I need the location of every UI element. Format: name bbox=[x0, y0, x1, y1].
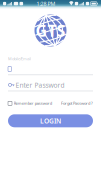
staticText: LOGIN bbox=[40, 116, 61, 125]
staticText: 1:28 PM bbox=[37, 0, 56, 7]
staticText: GTS bbox=[35, 20, 65, 41]
staticText: Enter Password bbox=[16, 81, 65, 90]
staticText: Remember password bbox=[14, 101, 52, 106]
staticText: Mobile/Email bbox=[8, 56, 31, 61]
button[interactable]: Forgot Password ? bbox=[61, 101, 93, 106]
button[interactable]: LOGIN bbox=[8, 114, 93, 127]
button[interactable]: Remember password bbox=[8, 101, 52, 106]
staticText: Forgot Password ? bbox=[61, 101, 93, 106]
